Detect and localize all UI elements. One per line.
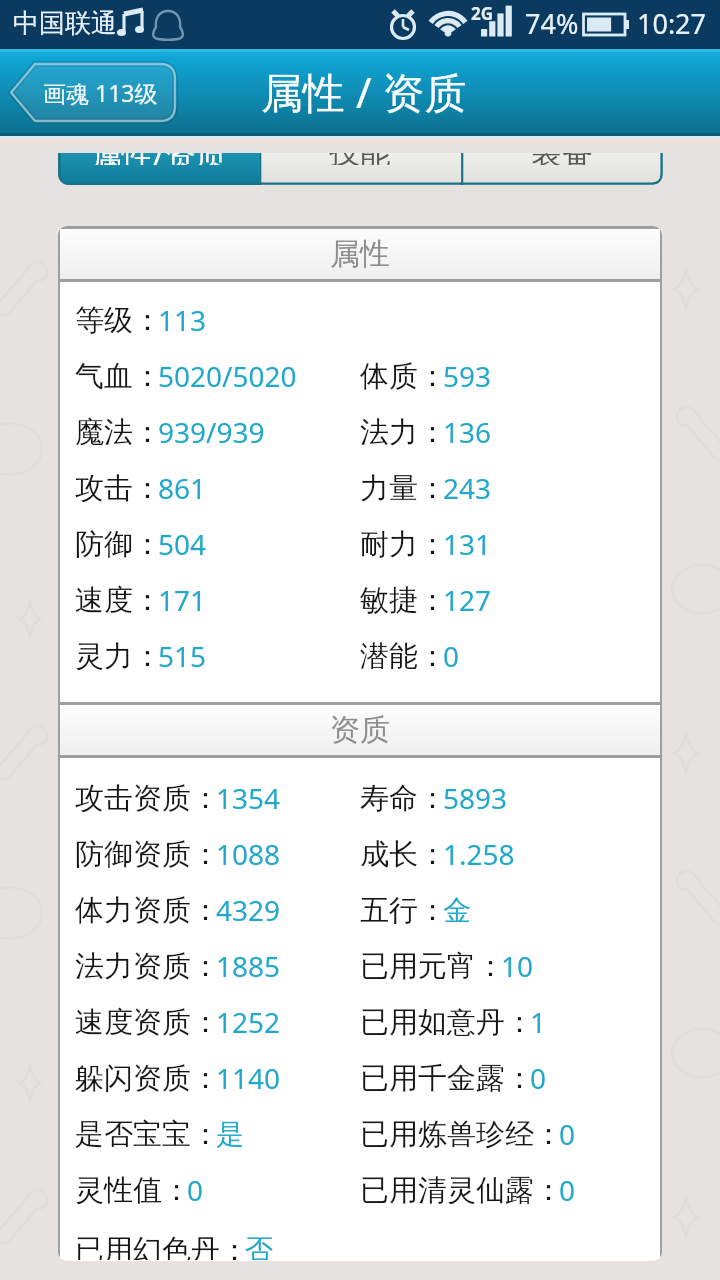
staticText: 五行：: [360, 892, 447, 929]
staticText: 属性: [330, 235, 390, 273]
staticText: 耐力：: [360, 526, 447, 563]
staticText: 体质：: [360, 358, 447, 395]
staticText: 1088: [216, 835, 281, 873]
staticText: 已用幻色丹：: [75, 1232, 249, 1260]
staticText: 潜能：: [360, 638, 447, 675]
staticText: 113: [158, 301, 207, 339]
staticText: 速度：: [75, 582, 162, 619]
button[interactable]: 属性/资质: [58, 153, 259, 185]
staticText: 已用元宵：: [360, 948, 505, 985]
staticText: 504: [158, 525, 207, 563]
staticText: 10:27: [637, 5, 707, 42]
staticText: 灵性值：: [75, 1172, 191, 1209]
staticText: 是否宝宝：: [75, 1116, 220, 1153]
staticText: 灵力：: [75, 638, 162, 675]
staticText: 金: [443, 893, 471, 928]
staticText: 4329: [216, 891, 281, 929]
staticText: 法力资质：: [75, 948, 220, 985]
staticText: 躲闪资质：: [75, 1060, 220, 1097]
staticText: 1885: [216, 947, 281, 985]
staticText: 1354: [216, 779, 281, 817]
staticText: 1.258: [443, 835, 515, 873]
button[interactable]: 装备: [461, 153, 663, 185]
staticText: 气血：: [75, 358, 162, 395]
staticText: 攻击资质：: [75, 780, 220, 817]
staticText: 画魂 113级: [43, 77, 158, 108]
staticText: 否: [245, 1232, 273, 1260]
staticText: 136: [443, 413, 492, 451]
staticText: 74%: [525, 5, 579, 42]
staticText: 515: [158, 637, 207, 675]
staticText: 攻击：: [75, 470, 162, 507]
staticText: 10: [501, 947, 534, 985]
staticText: 等级：: [75, 302, 162, 339]
staticText: 体力资质：: [75, 892, 220, 929]
button[interactable]: 技能: [259, 153, 461, 185]
staticText: 是: [216, 1117, 244, 1152]
staticText: 5893: [443, 779, 508, 817]
staticText: 寿命：: [360, 780, 447, 817]
staticText: 939/939: [158, 413, 265, 451]
staticText: 171: [158, 581, 207, 619]
staticText: 魔法：: [75, 414, 162, 451]
staticText: 2G: [471, 2, 494, 25]
staticText: 0: [559, 1115, 576, 1153]
staticText: 已用如意丹：: [360, 1004, 534, 1041]
staticText: 0: [530, 1059, 547, 1097]
staticText: 敏捷：: [360, 582, 447, 619]
staticText: 0: [559, 1171, 576, 1209]
staticText: 5020/5020: [158, 357, 297, 395]
staticText: 已用炼兽珍经：: [360, 1116, 563, 1153]
staticText: 成长：: [360, 836, 447, 873]
staticText: 243: [443, 469, 492, 507]
staticText: 593: [443, 357, 492, 395]
staticText: 防御资质：: [75, 836, 220, 873]
staticText: 力量：: [360, 470, 447, 507]
staticText: 资质: [330, 711, 390, 749]
staticText: 0: [443, 637, 460, 675]
staticText: 1140: [216, 1059, 281, 1097]
staticText: 127: [443, 581, 492, 619]
staticText: 已用清灵仙露：: [360, 1172, 563, 1209]
staticText: 属性/资质: [91, 153, 227, 165]
staticText: 0: [187, 1171, 204, 1209]
staticText: 防御：: [75, 526, 162, 563]
staticText: 861: [158, 469, 207, 507]
staticText: 中国联通: [13, 7, 117, 40]
staticText: 属性 / 资质: [261, 63, 467, 120]
staticText: 131: [443, 525, 492, 563]
staticText: 技能: [329, 153, 391, 165]
staticText: 法力：: [360, 414, 447, 451]
staticText: 1: [530, 1003, 547, 1041]
staticText: 速度资质：: [75, 1004, 220, 1041]
staticText: 已用千金露：: [360, 1060, 534, 1097]
staticText: 1252: [216, 1003, 281, 1041]
staticText: 装备: [531, 153, 593, 165]
button[interactable]: Back: [8, 61, 178, 124]
